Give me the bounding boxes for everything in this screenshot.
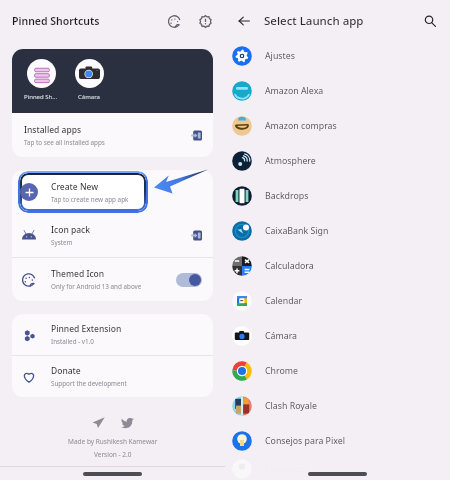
staticText: Version - 2.0 (94, 450, 132, 459)
staticText: Tap to see all installed apps (24, 138, 105, 147)
button[interactable]: CaixaBank Sign (225, 213, 450, 248)
staticText: CaixaBank Sign (265, 225, 329, 237)
button[interactable]: Contactos (225, 458, 450, 480)
staticText: Themed Icon (51, 268, 105, 280)
staticText: Made by Rushikesh Kamewar (68, 437, 158, 446)
staticText: Only for Android 13 and above (51, 282, 142, 291)
staticText: Pinned Sh... (24, 93, 58, 101)
button[interactable]: Twitter (117, 412, 137, 432)
button[interactable]: Donate (12, 356, 213, 397)
staticText: Donate (51, 365, 81, 377)
staticText: Amazon compras (265, 120, 337, 132)
button[interactable]: Ajustes (225, 38, 450, 73)
staticText: Cámara (265, 330, 298, 342)
button[interactable]: Search (418, 9, 442, 33)
button[interactable]: Cámara (225, 318, 450, 353)
staticText: Calculadora (265, 260, 314, 272)
staticText: Tap to create new app apk (51, 195, 129, 204)
button[interactable]: Telegram (88, 412, 108, 432)
button[interactable]: Theme (163, 10, 185, 32)
staticText: Atmosphere (265, 155, 316, 167)
staticText: Ajustes (265, 50, 295, 62)
button[interactable]: Amazon Alexa (225, 73, 450, 108)
button[interactable]: Consejos para Pixel (225, 423, 450, 458)
staticText: Installed apps (24, 124, 82, 136)
button[interactable]: Backdrops (225, 178, 450, 213)
button[interactable]: Pinned Sh... (17, 59, 65, 101)
staticText: Create New (51, 181, 99, 193)
staticText: Amazon Alexa (265, 85, 324, 97)
button[interactable]: Calendar (225, 283, 450, 318)
staticText: Cámara (78, 93, 100, 101)
staticText: Select Launch app (264, 13, 364, 29)
staticText: Chrome (265, 365, 298, 377)
button[interactable]: Atmosphere (225, 143, 450, 178)
button[interactable]: Themed Icon (12, 258, 213, 301)
staticText: Support the development (51, 379, 127, 388)
staticText: Backdrops (265, 190, 309, 202)
button[interactable]: Create New (12, 170, 213, 214)
button[interactable]: Back (232, 9, 256, 33)
staticText: Installed - v1.0 (51, 337, 94, 346)
button[interactable]: Clash Royale (225, 388, 450, 423)
staticText: System (51, 238, 73, 247)
button[interactable]: Calculadora (225, 248, 450, 283)
button[interactable]: Cámara (65, 59, 113, 101)
staticText: Consejos para Pixel (265, 435, 345, 447)
button[interactable]: Amazon compras (225, 108, 450, 143)
staticText: Pinned Shortcuts (12, 14, 100, 28)
button[interactable]: Pinned Extension (12, 314, 213, 355)
button[interactable]: Chrome (225, 353, 450, 388)
staticText: Pinned Extension (51, 323, 122, 335)
button[interactable]: Installed apps (12, 113, 213, 157)
staticText: Calendar (265, 295, 303, 307)
staticText: Clash Royale (265, 400, 317, 412)
button[interactable]: Icon pack (12, 214, 213, 257)
button[interactable] (176, 273, 202, 287)
button[interactable]: What's new (194, 10, 216, 32)
staticText: Icon pack (51, 224, 90, 236)
